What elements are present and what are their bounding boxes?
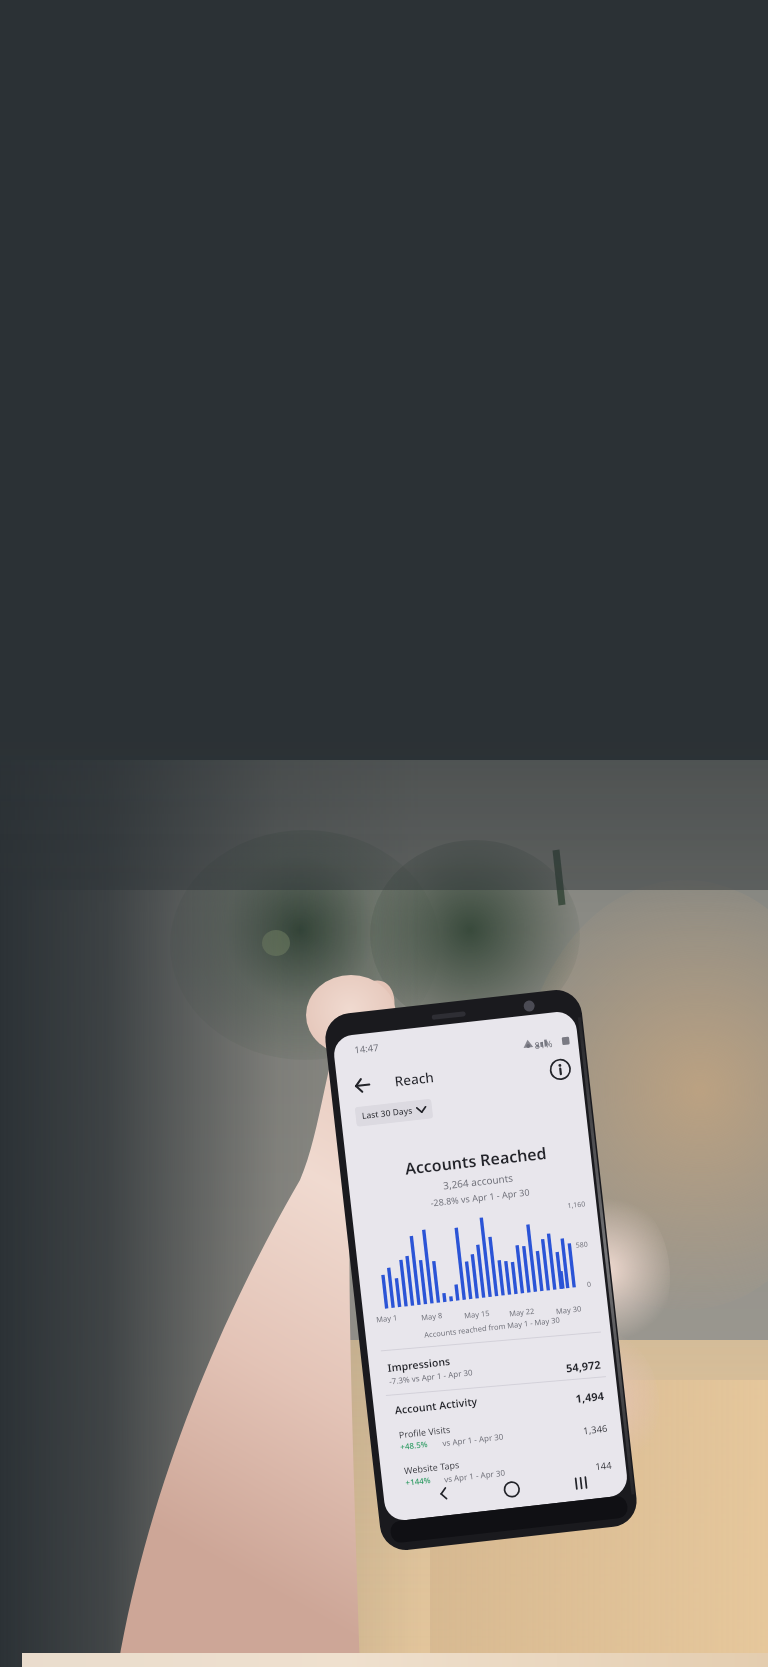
- button[interactable]: Instagram Insights Reach screen on phone: [0, 0, 768, 1667]
